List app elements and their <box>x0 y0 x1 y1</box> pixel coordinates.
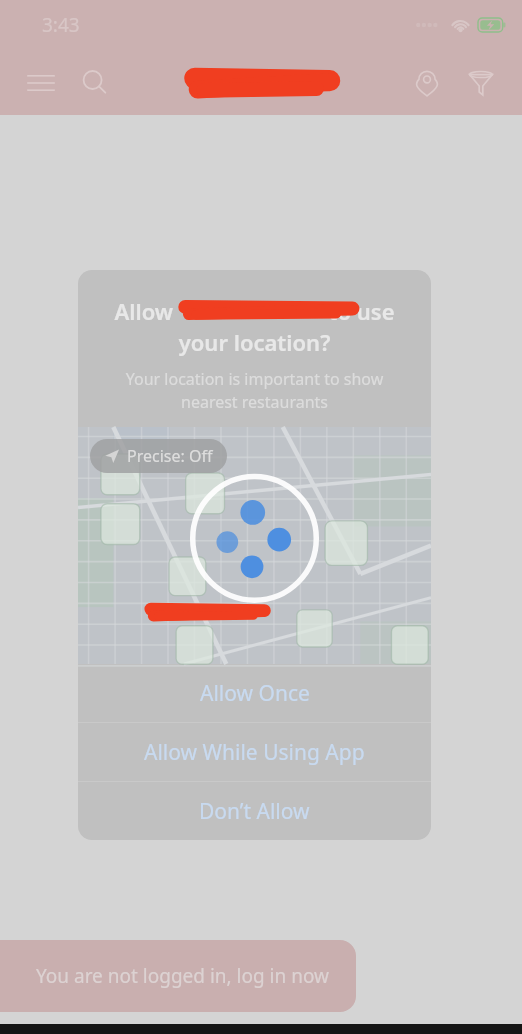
button[interactable]: Allow Once <box>78 664 431 722</box>
button[interactable]: Location <box>400 56 454 110</box>
staticText: Allow Once <box>200 679 310 708</box>
staticText: Allow “ ” to use your location? <box>94 296 415 358</box>
button[interactable]: Search <box>68 56 122 110</box>
staticText: Don’t Allow <box>199 797 310 826</box>
button[interactable]: Menu <box>14 56 68 110</box>
button[interactable]: Allow While Using App <box>78 723 431 781</box>
button[interactable]: Filter <box>454 56 508 110</box>
button[interactable]: Precise: Off <box>90 439 227 473</box>
staticText: We will be in touch with you soon. Pleas… <box>0 447 522 470</box>
staticText: Allow While Using App <box>144 738 365 767</box>
button[interactable]: You are not logged in, log in now <box>0 940 356 1012</box>
staticText: Precise: Off <box>127 445 213 467</box>
staticText: You are not logged in, log in now <box>36 963 329 989</box>
staticText: Your location is important to show neare… <box>94 368 415 413</box>
staticText: 3:43 <box>42 12 80 38</box>
button[interactable]: Don’t Allow <box>78 782 431 840</box>
